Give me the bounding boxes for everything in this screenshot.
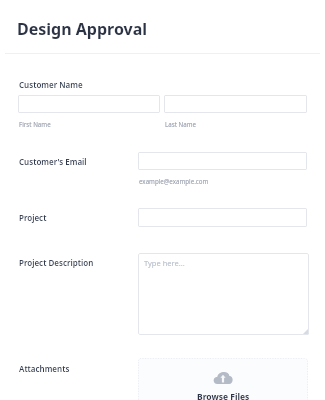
button[interactable]: Project	[138, 208, 307, 227]
staticText: Browse Files	[197, 391, 250, 400]
staticText: Attachments	[19, 363, 70, 374]
button[interactable]: First Name	[18, 95, 160, 113]
staticText: First Name	[19, 120, 51, 128]
button[interactable]: Customer's Email	[138, 152, 307, 170]
staticText: Last Name	[165, 120, 196, 128]
staticText: example@example.com	[139, 177, 209, 185]
staticText: Project Description	[19, 257, 94, 268]
button[interactable]: Browse Files	[138, 358, 308, 400]
staticText: Project	[19, 212, 47, 223]
button[interactable]: Last Name	[164, 95, 307, 113]
staticText: Design Approval	[17, 18, 148, 40]
button[interactable]: Project Description	[138, 253, 309, 335]
staticText: Customer's Email	[19, 156, 87, 167]
staticText: Type here...	[144, 258, 185, 268]
staticText: Customer Name	[19, 79, 83, 90]
